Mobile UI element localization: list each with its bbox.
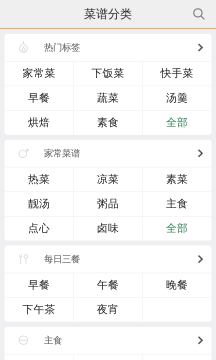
staticText: 家常菜 <box>22 67 55 80</box>
button[interactable]: 全部 <box>142 216 211 241</box>
button[interactable]: 主食 <box>4 327 211 354</box>
button[interactable]: 靓汤 <box>4 191 73 216</box>
staticText: 主食 <box>166 197 188 210</box>
button[interactable]: 汤羹 <box>142 86 211 110</box>
button[interactable]: 凉菜 <box>73 167 142 191</box>
button[interactable]: 点心 <box>4 216 73 241</box>
button[interactable]: 早餐 <box>4 86 73 110</box>
staticText: 汤羹 <box>166 91 188 104</box>
button[interactable]: 全部 <box>142 110 211 135</box>
button[interactable]: 素食 <box>73 110 142 135</box>
staticText: 下饭菜 <box>91 67 124 80</box>
button[interactable]: 热菜 <box>4 167 73 191</box>
staticText: 家常菜谱 <box>44 148 80 159</box>
button[interactable]: 素菜 <box>142 167 211 191</box>
button[interactable]: 下午茶 <box>4 297 73 322</box>
button[interactable]: 家常菜 <box>4 61 73 86</box>
staticText: 午餐 <box>97 278 119 291</box>
button[interactable]: 午餐 <box>73 273 142 297</box>
button[interactable]: 早餐 <box>4 273 73 297</box>
staticText: 蔬菜 <box>97 91 119 104</box>
button[interactable]: 主食 <box>142 191 211 216</box>
staticText: 粥品 <box>97 197 119 210</box>
staticText: 全部 <box>166 116 188 129</box>
staticText: 菜谱分类 <box>84 7 132 21</box>
staticText: 主食 <box>44 335 62 346</box>
button[interactable]: 卤味 <box>73 216 142 241</box>
staticText: 晚餐 <box>166 278 188 291</box>
button[interactable]: 烘焙 <box>4 110 73 135</box>
staticText: 快手菜 <box>160 67 193 80</box>
staticText: 凉菜 <box>97 172 119 186</box>
button[interactable]: 每日三餐 <box>4 246 211 273</box>
button[interactable]: 蔬菜 <box>73 86 142 110</box>
staticText: 烘焙 <box>28 116 50 129</box>
staticText: 素菜 <box>166 172 188 186</box>
staticText: 热菜 <box>28 172 50 186</box>
staticText: 热门标签 <box>44 42 80 53</box>
staticText: 靓汤 <box>28 197 50 210</box>
staticText: 卤味 <box>97 222 119 235</box>
staticText: 素食 <box>97 116 119 129</box>
button[interactable]: 热门标签 <box>4 34 211 61</box>
button[interactable]: 晚餐 <box>142 273 211 297</box>
staticText: 点心 <box>28 222 50 235</box>
button[interactable]: 下饭菜 <box>73 61 142 86</box>
staticText: 夜宵 <box>97 303 119 316</box>
staticText: 早餐 <box>28 91 50 104</box>
staticText: 早餐 <box>28 278 50 291</box>
staticText: 每日三餐 <box>44 253 80 265</box>
button[interactable]: 夜宵 <box>73 297 142 322</box>
button[interactable]: 快手菜 <box>142 61 211 86</box>
button[interactable]: Search <box>187 2 211 26</box>
button[interactable]: 粥品 <box>73 191 142 216</box>
staticText: 全部 <box>166 222 188 235</box>
button[interactable]: 家常菜谱 <box>4 140 211 167</box>
staticText: 下午茶 <box>22 303 55 316</box>
